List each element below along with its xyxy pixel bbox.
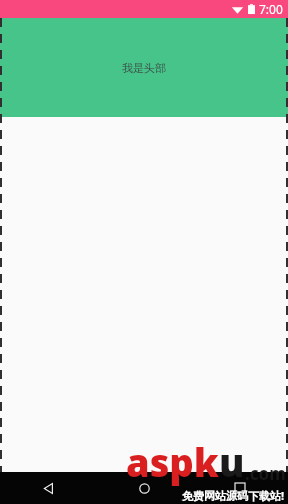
staticText: 7:00 xyxy=(259,1,283,17)
button[interactable]: Back xyxy=(0,472,96,504)
button[interactable]: Home xyxy=(96,472,192,504)
staticText: 免费网站源码下载站! xyxy=(182,488,285,503)
button[interactable]: Recent apps xyxy=(192,472,288,504)
staticText: .com xyxy=(245,462,286,485)
button[interactable]: 我是头部 xyxy=(0,18,288,117)
staticText: aspk xyxy=(126,436,219,488)
staticText: u xyxy=(219,436,245,488)
staticText: 我是头部 xyxy=(122,61,166,75)
